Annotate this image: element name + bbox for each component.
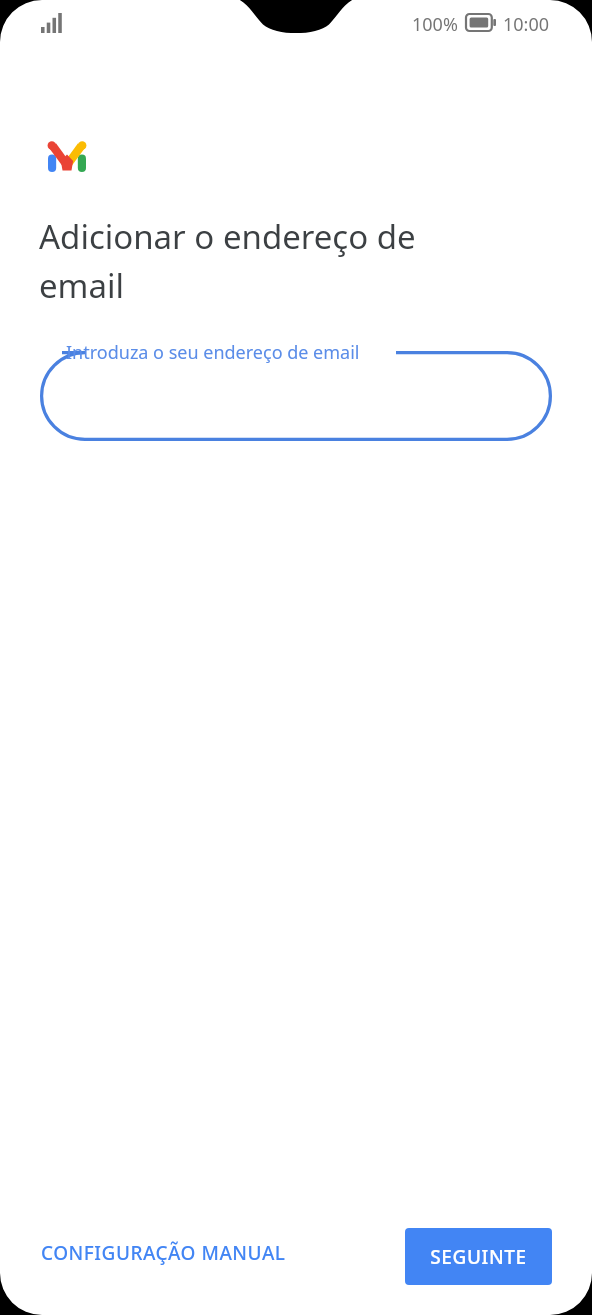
staticText: CONFIGURAÇÃO MANUAL [41,1240,286,1266]
staticText: 10:00 [503,12,550,37]
staticText: Introduza o seu endereço de email [66,340,360,365]
button[interactable]: SEGUINTE [405,1228,552,1285]
staticText: 100% [412,12,458,37]
button[interactable]: CONFIGURAÇÃO MANUAL [25,1232,302,1274]
button[interactable]: Introduza o seu endereço de email [40,351,552,441]
staticText: Adicionar o endereço de email [39,214,489,307]
staticText: SEGUINTE [430,1244,527,1270]
